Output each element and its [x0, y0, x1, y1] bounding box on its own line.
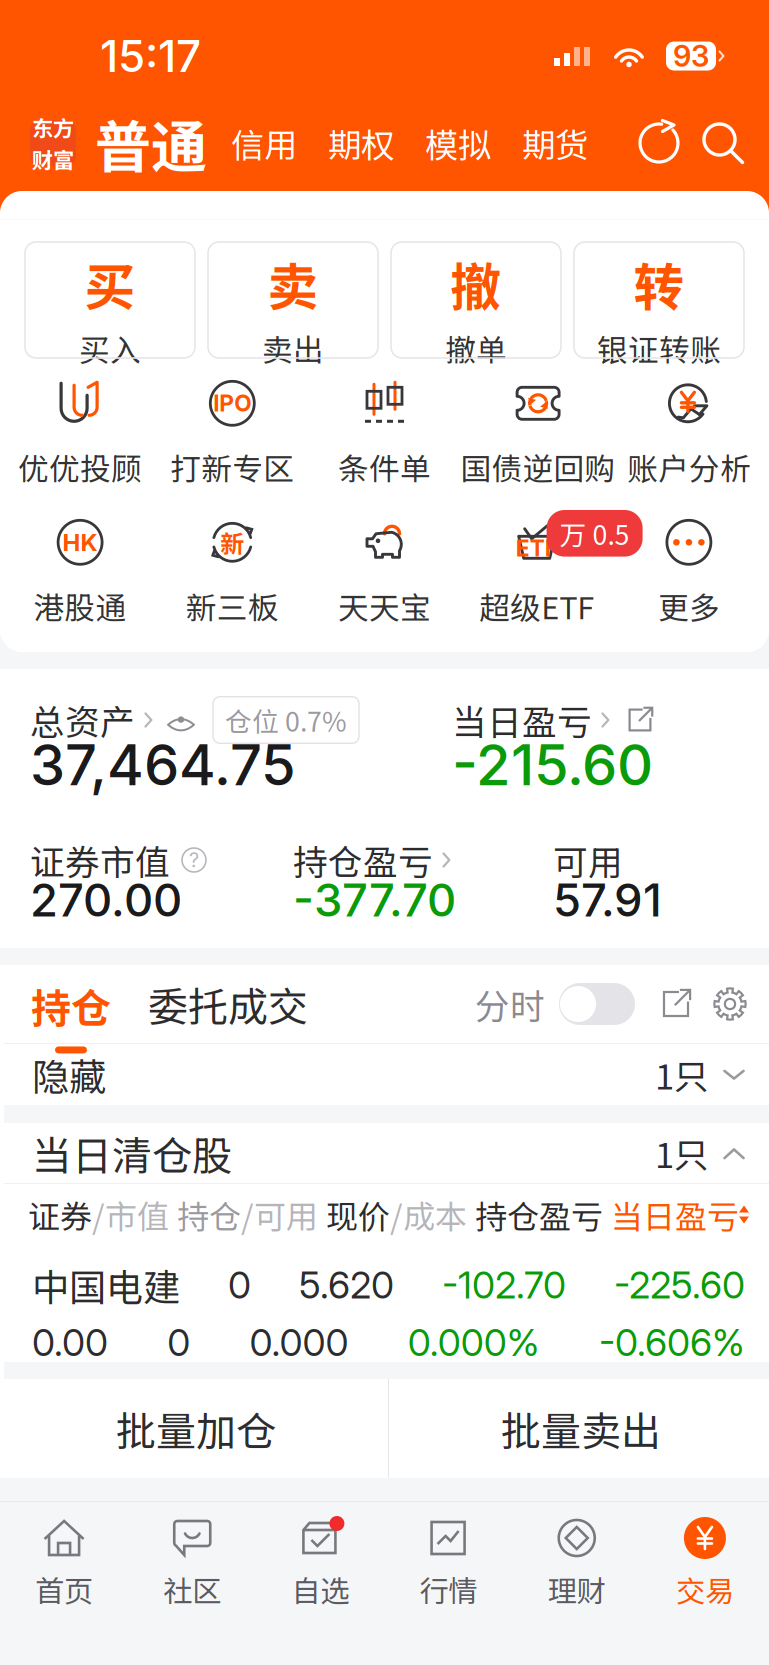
- button[interactable]: 自选: [256, 1502, 384, 1665]
- button[interactable]: 新: [156, 522, 308, 622]
- staticText: 账户分析: [627, 445, 751, 489]
- button[interactable]: HK: [4, 522, 156, 622]
- button[interactable]: 委托成交: [110, 965, 308, 1043]
- staticText: 更多: [658, 584, 720, 628]
- staticText: 证券市值: [30, 835, 170, 885]
- button[interactable]: Intraday chart toggle: [559, 983, 635, 1025]
- staticText: -215.60: [452, 731, 653, 799]
- button[interactable]: 卖: [208, 242, 378, 358]
- staticText: 中国电建: [32, 1258, 180, 1312]
- button[interactable]: 期权: [297, 109, 394, 177]
- staticText: /可用: [241, 1191, 318, 1238]
- staticText: 0.000%: [408, 1320, 540, 1365]
- button[interactable]: IPO: [156, 383, 308, 483]
- button[interactable]: 理财: [513, 1502, 641, 1665]
- staticText: 37,464.75: [30, 731, 296, 799]
- staticText: 撤: [450, 247, 501, 320]
- button[interactable]: 更多: [613, 522, 765, 622]
- staticText: 港股通: [34, 584, 127, 628]
- staticText: 0.000: [249, 1320, 348, 1365]
- button[interactable]: 隐藏: [4, 1044, 769, 1105]
- button[interactable]: 模拟: [394, 109, 491, 177]
- staticText: 1只: [655, 1049, 709, 1100]
- staticText: 0: [167, 1320, 190, 1365]
- button[interactable]: Search: [695, 118, 751, 168]
- staticText: 东方: [32, 112, 74, 142]
- staticText: 买: [84, 247, 135, 320]
- staticText: ?: [189, 848, 199, 872]
- staticText: 持仓: [177, 1191, 241, 1238]
- staticText: 0: [228, 1262, 251, 1307]
- staticText: 持仓: [31, 976, 111, 1034]
- button[interactable]: 买: [25, 242, 195, 358]
- button[interactable]: Settings: [691, 987, 747, 1021]
- staticText: -0.606%: [599, 1320, 745, 1365]
- staticText: /成本: [390, 1191, 467, 1238]
- button[interactable]: 条件单: [308, 383, 461, 483]
- staticText: 首页: [35, 1568, 93, 1610]
- staticText: 现价: [326, 1191, 390, 1238]
- button[interactable]: 交易: [641, 1502, 769, 1665]
- button[interactable]: Open in new window: [635, 989, 691, 1019]
- staticText: 分时: [475, 979, 545, 1029]
- staticText: 当日盈亏: [452, 695, 592, 745]
- staticText: -102.70: [442, 1262, 566, 1307]
- button[interactable]: 转: [574, 242, 744, 358]
- staticText: 理财: [548, 1568, 606, 1610]
- button[interactable]: 天天宝: [308, 522, 461, 622]
- button[interactable]: ETF: [461, 522, 613, 622]
- staticText: 5.620: [299, 1262, 394, 1307]
- button[interactable]: 持仓: [32, 965, 110, 1043]
- button[interactable]: 当日盈亏: [452, 700, 653, 740]
- staticText: 270.00: [30, 873, 182, 927]
- button[interactable]: 优优投顾: [4, 383, 156, 483]
- staticText: 万 0.5: [560, 514, 630, 553]
- button[interactable]: 东方: [30, 120, 76, 166]
- button[interactable]: 期货: [491, 109, 588, 177]
- button[interactable]: 国债逆回购: [461, 383, 613, 483]
- staticText: 卖: [267, 247, 318, 320]
- staticText: 1只: [655, 1128, 709, 1178]
- staticText: 社区: [163, 1568, 221, 1610]
- staticText: 新: [220, 525, 244, 560]
- staticText: 仓位 0.7%: [225, 701, 347, 739]
- button[interactable]: 持仓盈亏: [293, 842, 450, 878]
- staticText: 新三板: [186, 584, 279, 628]
- button[interactable]: 账户分析: [613, 383, 765, 483]
- staticText: 期货: [522, 119, 588, 167]
- button[interactable]: 行情: [384, 1502, 513, 1665]
- staticText: 隐藏: [32, 1047, 106, 1102]
- button[interactable]: 首页: [0, 1502, 128, 1665]
- button[interactable]: 批量卖出: [389, 1379, 769, 1478]
- staticText: 条件单: [338, 445, 431, 489]
- staticText: 期权: [328, 119, 394, 167]
- button[interactable]: Refresh: [631, 118, 687, 168]
- button[interactable]: 社区: [128, 1502, 256, 1665]
- staticText: 优优投顾: [18, 445, 142, 489]
- staticText: 银证转账: [597, 326, 721, 370]
- button[interactable]: 普通: [76, 98, 207, 188]
- staticText: 打新专区: [170, 445, 294, 489]
- staticText: 93: [673, 38, 709, 74]
- button[interactable]: 批量加仓: [4, 1379, 388, 1478]
- staticText: 转: [633, 247, 684, 320]
- staticText: -225.60: [614, 1262, 745, 1307]
- staticText: 财富: [32, 143, 74, 174]
- staticText: 天天宝: [338, 584, 431, 628]
- staticText: 批量加仓: [116, 1399, 276, 1457]
- staticText: 交易: [676, 1568, 734, 1610]
- staticText: 总资产: [30, 695, 135, 745]
- button[interactable]: 总资产: [30, 700, 359, 740]
- button[interactable]: 撤: [391, 242, 561, 358]
- staticText: ETF: [516, 535, 558, 562]
- staticText: 57.91: [553, 873, 662, 927]
- staticText: 可用: [553, 835, 623, 885]
- staticText: IPO: [213, 390, 251, 417]
- staticText: HK: [63, 528, 98, 557]
- button[interactable]: 信用: [207, 109, 297, 177]
- staticText: 模拟: [425, 119, 491, 167]
- staticText: 证券: [28, 1191, 92, 1238]
- staticText: 买入: [79, 326, 141, 370]
- button[interactable]: 当日清仓股: [4, 1123, 769, 1183]
- button[interactable]: 中国电建: [4, 1245, 769, 1362]
